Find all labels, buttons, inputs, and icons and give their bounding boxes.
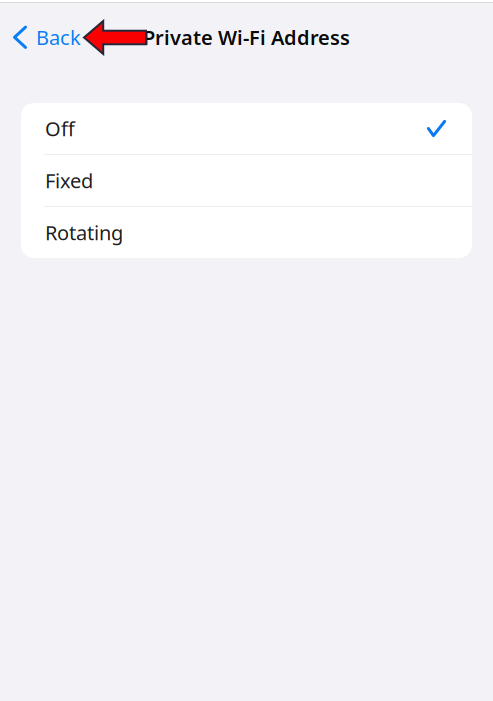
- button[interactable]: Off: [21, 103, 472, 154]
- staticText: Off: [45, 115, 75, 142]
- staticText: Rotating: [45, 219, 123, 246]
- button[interactable]: Rotating: [21, 207, 472, 258]
- staticText: Fixed: [45, 167, 93, 194]
- button[interactable]: Back: [0, 16, 81, 59]
- staticText: Back: [36, 24, 81, 51]
- staticText: Private Wi-Fi Address: [143, 24, 350, 51]
- button[interactable]: Fixed: [21, 155, 472, 206]
